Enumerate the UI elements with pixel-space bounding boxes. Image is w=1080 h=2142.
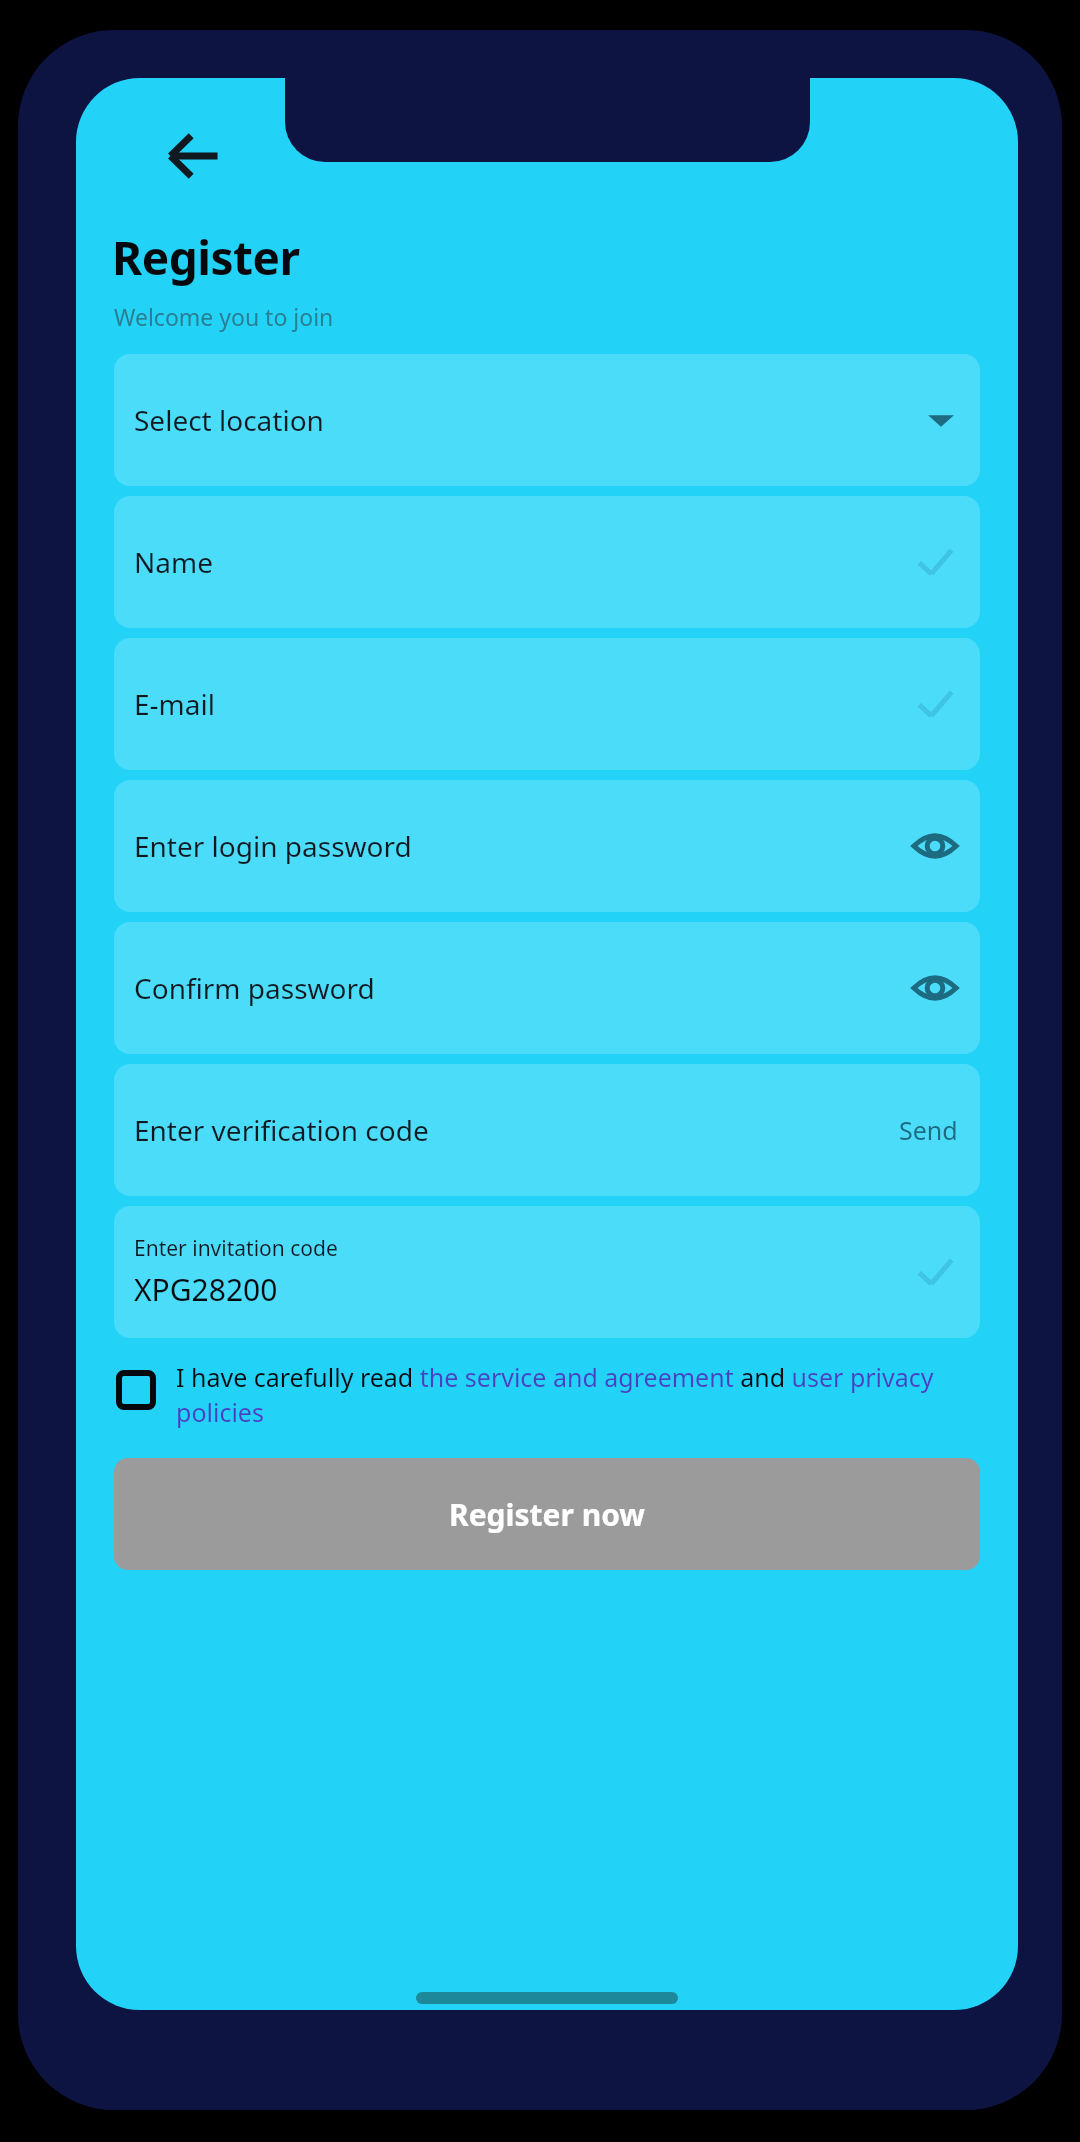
button[interactable]: Select location xyxy=(114,354,980,486)
button[interactable]: Back xyxy=(146,108,242,204)
staticText: I have carefully read the service and ag… xyxy=(176,1360,990,1430)
staticText: Register xyxy=(112,226,300,289)
staticText: Enter invitation code xyxy=(134,1234,338,1263)
button[interactable]: E-mail xyxy=(114,638,980,770)
button[interactable]: Enter login password xyxy=(114,780,980,912)
button[interactable]: Enter invitation code xyxy=(114,1206,980,1338)
button[interactable]: Register now xyxy=(114,1458,980,1570)
button[interactable]: I have carefully read the service and ag… xyxy=(104,1360,990,1430)
staticText: Register now xyxy=(449,1494,646,1535)
button[interactable]: Send xyxy=(899,1113,958,1147)
staticText: Confirm password xyxy=(134,969,375,1007)
staticText: Enter login password xyxy=(134,827,412,865)
staticText: Welcome you to join xyxy=(114,301,334,332)
staticText: XPG28200 xyxy=(134,1269,278,1310)
button[interactable]: Enter verification code xyxy=(114,1064,980,1196)
staticText: Select location xyxy=(134,401,324,439)
staticText: E-mail xyxy=(134,685,215,723)
staticText: Name xyxy=(134,543,213,581)
button[interactable]: Confirm password xyxy=(114,922,980,1054)
staticText: Enter verification code xyxy=(134,1111,429,1149)
button[interactable]: Name xyxy=(114,496,980,628)
staticText: Send xyxy=(899,1113,958,1147)
